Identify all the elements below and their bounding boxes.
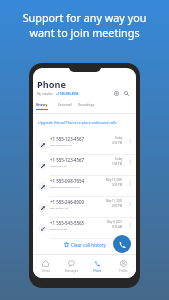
- button[interactable]: More options: [126, 200, 133, 207]
- staticText: +1 555-123-4567: [50, 136, 85, 142]
- staticText: My number:: [37, 92, 54, 96]
- staticText: +1 555-098-7654: [50, 178, 85, 184]
- button[interactable]: Messages: [58, 260, 84, 273]
- staticText: 3:30 PM: [112, 183, 123, 187]
- staticText: Today: [115, 157, 123, 161]
- staticText: 2:50 PM: [112, 141, 123, 145]
- button[interactable]: +1 555-123-4567: [33, 155, 136, 176]
- staticText: Home: [42, 269, 50, 273]
- button[interactable]: Upgrade Virtual Phone to place outbound …: [38, 120, 117, 125]
- staticText: May 13, 2021: [106, 178, 123, 182]
- button[interactable]: Clear call history: [33, 238, 136, 251]
- staticText: May 9, 2021: [107, 220, 123, 224]
- staticText: SCRANTON, PA: [50, 164, 67, 167]
- staticText: Voicemail: [58, 103, 72, 107]
- button[interactable]: More options: [126, 179, 133, 186]
- staticText: 1:04 PM: [112, 162, 123, 166]
- button[interactable]: More options: [126, 221, 133, 228]
- button[interactable]: +1 555-123-4567: [33, 134, 136, 155]
- button[interactable]: Recordings: [78, 103, 95, 110]
- button[interactable]: Settings: [113, 90, 120, 97]
- staticText: History: [36, 103, 48, 107]
- staticText: RANCHO CUCAMONGA, CA: [50, 185, 81, 188]
- staticText: Profile: [119, 269, 128, 273]
- button[interactable]: +1 555-246-8000: [33, 197, 136, 218]
- staticText: NEW YORK CITY, NY: [50, 143, 73, 146]
- staticText: Support for any way you want to join mee…: [0, 10, 169, 40]
- staticText: +1 555-545-5565: [50, 220, 85, 226]
- staticText: Clear call history: [71, 242, 106, 248]
- staticText: +1 555-123-4567: [50, 157, 85, 163]
- staticText: Phone: [93, 269, 102, 273]
- button[interactable]: Profile: [110, 260, 136, 273]
- button[interactable]: Phone: [84, 260, 110, 273]
- button[interactable]: +1 555-545-5565: [33, 218, 136, 239]
- button[interactable]: Voicemail: [58, 103, 72, 110]
- staticText: 2:50 PM: [112, 204, 123, 208]
- button[interactable]: New call: [113, 235, 131, 253]
- staticText: +1 555-246-8000: [50, 199, 85, 205]
- button[interactable]: History: [36, 103, 48, 110]
- staticText: +1 555-555-5555: [56, 92, 79, 96]
- staticText: 9:32 AM: [112, 225, 123, 229]
- button[interactable]: More options: [126, 158, 133, 165]
- staticText: Phone: [37, 78, 66, 91]
- staticText: Recordings: [78, 103, 95, 107]
- button[interactable]: +1 555-098-7654: [33, 176, 136, 197]
- staticText: SIMI VALLEY, CA: [50, 206, 68, 209]
- button[interactable]: More options: [126, 137, 133, 144]
- staticText: Messages: [65, 269, 78, 273]
- button[interactable]: Home: [33, 260, 58, 273]
- staticText: PORTLAND, OR: [50, 227, 67, 230]
- button[interactable]: Search: [123, 90, 130, 97]
- staticText: Today: [115, 136, 123, 140]
- staticText: May 11, 2021: [106, 199, 123, 203]
